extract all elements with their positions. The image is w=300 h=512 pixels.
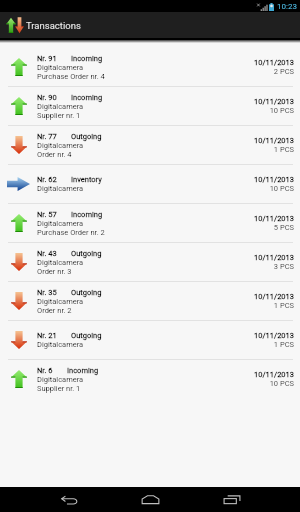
staticText: Digitalcamera	[37, 141, 84, 150]
staticText: 10/11/2013	[254, 97, 294, 106]
staticText: Digitalcamera	[37, 297, 84, 306]
staticText: Outgoing	[71, 249, 102, 258]
button[interactable]: Home	[110, 487, 191, 512]
staticText: Outgoing	[71, 331, 102, 340]
staticText: Digitalcamera	[37, 184, 84, 193]
staticText: 10/11/2013	[254, 331, 294, 340]
staticText: Incoming	[67, 366, 99, 375]
staticText: Digitalcamera	[37, 102, 84, 111]
button[interactable]: Back	[29, 487, 110, 512]
staticText: 10/11/2013	[254, 370, 294, 379]
staticText: 1 PCS	[273, 301, 294, 310]
button[interactable]: Nr. 6	[0, 360, 300, 398]
staticText: Order nr. 2	[37, 306, 72, 315]
button[interactable]: Recent apps	[191, 487, 272, 512]
staticText: Nr. 77	[37, 132, 57, 141]
button[interactable]: Nr. 35	[0, 282, 300, 320]
staticText: 10/11/2013	[254, 175, 294, 184]
staticText: 3 PCS	[273, 262, 294, 271]
staticText: 10:23	[277, 2, 297, 11]
button[interactable]: Nr. 62	[0, 165, 300, 203]
staticText: Nr. 35	[37, 288, 57, 297]
staticText: Transactions	[26, 20, 81, 31]
staticText: Order nr. 4	[37, 150, 72, 159]
staticText: Outgoing	[71, 132, 102, 141]
staticText: Nr. 57	[37, 210, 57, 219]
button[interactable]: Nr. 77	[0, 126, 300, 164]
staticText: Inventory	[71, 175, 102, 184]
staticText: 10/11/2013	[254, 214, 294, 223]
staticText: Digitalcamera	[37, 375, 84, 384]
staticText: 5 PCS	[273, 223, 294, 232]
staticText: 10/11/2013	[254, 292, 294, 301]
staticText: Digitalcamera	[37, 340, 84, 349]
staticText: 10 PCS	[269, 184, 294, 193]
staticText: 1 PCS	[273, 340, 294, 349]
staticText: Purchase Order nr. 2	[37, 228, 105, 237]
button[interactable]: Nr. 57	[0, 204, 300, 242]
staticText: Incoming	[71, 210, 103, 219]
staticText: Digitalcamera	[37, 219, 84, 228]
staticText: 10/11/2013	[254, 253, 294, 262]
staticText: 10 PCS	[269, 379, 294, 388]
staticText: Incoming	[71, 54, 103, 63]
staticText: Supplier nr. 1	[37, 111, 81, 120]
button[interactable]: Nr. 90	[0, 87, 300, 125]
staticText: Nr. 90	[37, 93, 57, 102]
staticText: Outgoing	[71, 288, 102, 297]
staticText: 10/11/2013	[254, 136, 294, 145]
staticText: Nr. 21	[37, 331, 57, 340]
staticText: Nr. 62	[37, 175, 57, 184]
button[interactable]: Nr. 21	[0, 321, 300, 359]
button[interactable]: Nr. 91	[0, 48, 300, 86]
button[interactable]: Nr. 43	[0, 243, 300, 281]
staticText: Purchase Order nr. 4	[37, 72, 105, 81]
staticText: Incoming	[71, 93, 103, 102]
staticText: Nr. 91	[37, 54, 57, 63]
staticText: 10/11/2013	[254, 58, 294, 67]
staticText: Digitalcamera	[37, 63, 84, 72]
staticText: Supplier nr. 1	[37, 384, 81, 393]
staticText: Digitalcamera	[37, 258, 84, 267]
staticText: Order nr. 3	[37, 267, 72, 276]
staticText: 2 PCS	[273, 67, 294, 76]
staticText: Nr. 43	[37, 249, 57, 258]
staticText: Nr. 6	[37, 366, 53, 375]
staticText: 10 PCS	[269, 106, 294, 115]
staticText: 1 PCS	[273, 145, 294, 154]
